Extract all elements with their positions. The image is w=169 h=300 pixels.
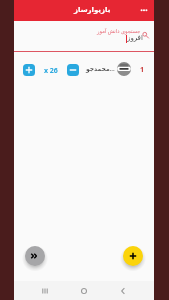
button[interactable]: Home xyxy=(76,283,92,299)
button[interactable]: Recents xyxy=(37,283,53,299)
button[interactable]: Add xyxy=(123,246,143,266)
button[interactable]: Decrease xyxy=(67,64,79,76)
button[interactable]: Increase xyxy=(14,56,154,82)
staticText: 1 xyxy=(140,65,145,75)
staticText: افروز xyxy=(127,34,143,42)
staticText: x 26 xyxy=(44,66,58,76)
button[interactable]: Back xyxy=(115,283,131,299)
button[interactable]: Next xyxy=(25,246,45,266)
staticText: جستجوی دانش آموز xyxy=(97,27,141,34)
button[interactable]: Search xyxy=(139,29,151,41)
button[interactable]: Increase xyxy=(23,64,35,76)
staticText: محمدجو... xyxy=(86,65,115,73)
staticText: بازیوارساز xyxy=(74,6,111,14)
button[interactable]: More options xyxy=(137,3,151,17)
